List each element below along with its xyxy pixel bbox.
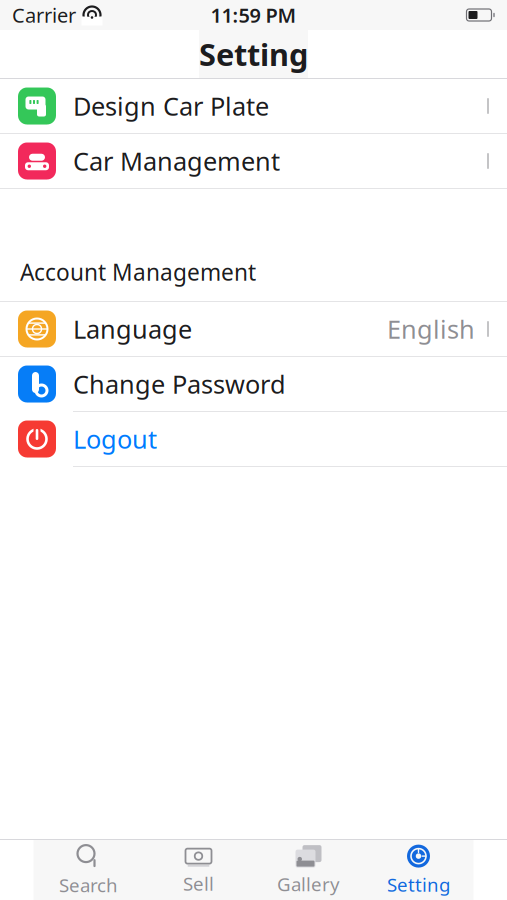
button[interactable]: Setting: [363, 841, 473, 899]
button[interactable]: Car Management: [0, 134, 507, 188]
button[interactable]: Search: [33, 841, 143, 899]
staticText: Setting: [387, 872, 450, 897]
staticText: Search: [59, 873, 118, 897]
button[interactable]: Sell: [143, 841, 253, 899]
staticText: Car Management: [73, 144, 280, 178]
staticText: English: [387, 312, 475, 346]
staticText: Carrier: [12, 2, 76, 28]
staticText: Sell: [183, 871, 214, 896]
staticText: Design Car Plate: [73, 89, 269, 123]
button[interactable]: Language: [0, 302, 507, 356]
staticText: 11:59 PM: [210, 2, 296, 28]
button[interactable]: Change Password: [0, 357, 507, 411]
staticText: Change Password: [73, 367, 286, 401]
staticText: Logout: [73, 422, 157, 456]
staticText: Language: [73, 312, 192, 346]
button[interactable]: Design Car Plate: [0, 79, 507, 133]
staticText: Account Management: [20, 257, 256, 287]
staticText: Gallery: [277, 872, 340, 896]
button[interactable]: Logout: [0, 412, 507, 466]
staticText: Setting: [199, 34, 308, 74]
button[interactable]: Gallery: [253, 841, 363, 899]
